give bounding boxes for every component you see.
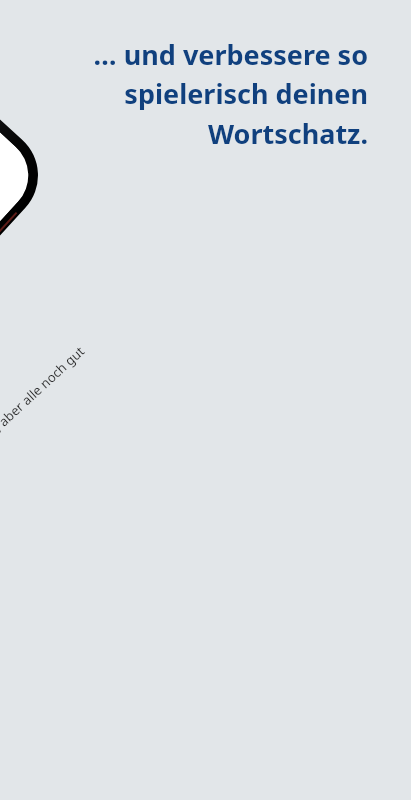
staticText: … war alt, aber alle noch gut [0, 342, 88, 472]
button[interactable]: … und verbessere so spielerisch deinen W… [0, 0, 411, 152]
